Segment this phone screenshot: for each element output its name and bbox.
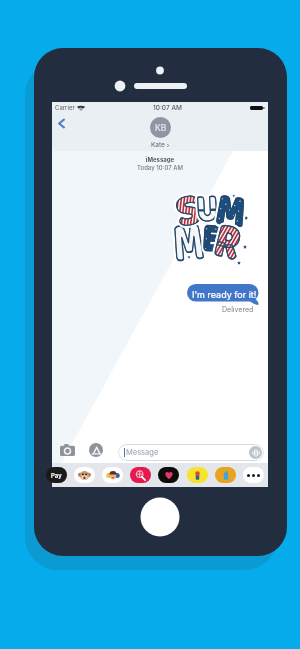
button[interactable]: Memoji [102, 467, 123, 483]
staticText: Today 10:07 AM [52, 164, 268, 171]
staticText: I'm ready for it! [192, 289, 257, 300]
button[interactable]: Hand stickers [215, 467, 236, 483]
staticText: Carrier [55, 104, 75, 111]
button[interactable]: Monkey stickers [74, 467, 95, 483]
button[interactable]: Camera [59, 442, 75, 458]
staticText: Delivered [222, 305, 254, 313]
staticText: KB [155, 123, 167, 133]
button[interactable]: KB [150, 117, 171, 149]
button[interactable]: App Store [88, 442, 104, 458]
staticText: Pay [51, 472, 62, 479]
button[interactable]: Sticker pack [187, 467, 208, 483]
staticText: iMessage [52, 156, 268, 163]
button[interactable]: Image search [130, 467, 151, 483]
staticText: Message [126, 448, 159, 457]
button[interactable]: Message [118, 444, 264, 461]
staticText: 10:07 AM [153, 104, 182, 112]
button[interactable]: Apple Pay [46, 467, 67, 483]
button[interactable]: I'm ready for it! [187, 284, 261, 305]
button[interactable]: Back [52, 114, 71, 133]
staticText: Kate › [151, 141, 170, 149]
button[interactable]: Digital Touch [158, 467, 179, 483]
button[interactable]: Audio message [249, 446, 262, 459]
button[interactable]: More apps [243, 467, 264, 483]
